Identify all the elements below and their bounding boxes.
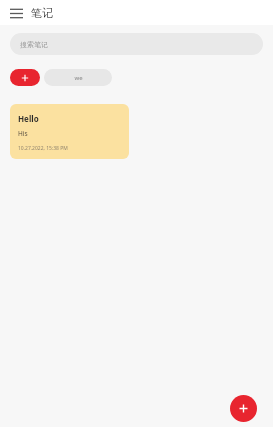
button[interactable]: Hello xyxy=(10,104,129,159)
staticText: 搜索笔记 xyxy=(20,40,48,49)
staticText: 笔记 xyxy=(31,6,53,20)
button[interactable]: 搜索笔记 xyxy=(10,33,263,55)
staticText: Hello xyxy=(18,113,39,124)
staticText: His xyxy=(18,129,28,138)
staticText: 10.27.2022, 15:38 PM xyxy=(18,145,68,152)
button[interactable]: Add category xyxy=(10,69,40,86)
button[interactable]: Menu xyxy=(7,4,25,22)
button[interactable]: New note xyxy=(230,395,257,422)
staticText: we xyxy=(74,74,83,82)
button[interactable]: we xyxy=(44,69,112,86)
